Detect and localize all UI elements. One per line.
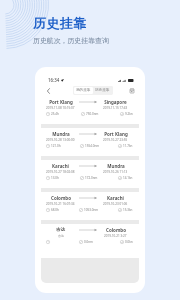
button[interactable]: Colombo bbox=[41, 192, 139, 220]
staticText: 2019-11-08 10:15:07 bbox=[46, 106, 75, 110]
staticText: 1053.0nm bbox=[84, 208, 99, 212]
staticText: 吉达 bbox=[56, 227, 65, 233]
staticText: 0.0kn bbox=[125, 240, 133, 244]
button[interactable]: 我的挂靠 bbox=[74, 87, 93, 94]
staticText: 历史航次，历史挂靠查询 bbox=[33, 36, 109, 45]
staticText: 0.0nm bbox=[84, 240, 93, 244]
button[interactable]: Calendar bbox=[127, 85, 136, 96]
staticText: 2019-10-26 11:13 bbox=[103, 170, 128, 174]
button[interactable]: Port Klang bbox=[41, 96, 139, 124]
staticText: 68.0h bbox=[51, 208, 59, 212]
staticText: 2019-10-21 3:27 bbox=[104, 234, 127, 238]
staticText: Mundra bbox=[107, 163, 125, 169]
button[interactable]: 历史挂靠 bbox=[93, 87, 112, 94]
staticText: 14.1kn bbox=[123, 176, 133, 180]
staticText: Colombo bbox=[51, 195, 71, 201]
staticText: 2019-10-27 18:02:08 bbox=[46, 170, 75, 174]
staticText: 2019-11-15 17:43 bbox=[103, 106, 128, 110]
staticText: 9.2kn bbox=[125, 112, 133, 116]
staticText: 历史挂靠 bbox=[33, 15, 87, 31]
staticText: 2019-10-21 16:07:34 bbox=[46, 202, 75, 206]
staticText: 750.0nm bbox=[86, 112, 99, 116]
staticText: Port Klang bbox=[104, 131, 128, 137]
staticText: Karachi bbox=[52, 163, 69, 169]
staticText: 2019-10-23 01:06 bbox=[103, 202, 128, 206]
staticText: 15.3kn bbox=[123, 208, 133, 212]
staticText: Karachi bbox=[107, 195, 124, 201]
staticText: Singapore bbox=[104, 99, 127, 105]
button[interactable]: 吉达 bbox=[41, 224, 139, 258]
staticText: 2019-10-28 13:00:00 bbox=[46, 138, 75, 142]
staticText: 1554.0nm bbox=[85, 144, 100, 148]
staticText: 13.0h bbox=[51, 176, 59, 180]
staticText: Port Klang bbox=[49, 99, 73, 105]
staticText: 121.0h bbox=[51, 144, 61, 148]
staticText: Mundra bbox=[52, 131, 70, 137]
staticText: Colombo bbox=[106, 227, 126, 233]
staticText: 我的挂靠 bbox=[76, 88, 91, 93]
staticText: 172.0nm bbox=[85, 176, 98, 180]
staticText: 历史挂靠 bbox=[95, 88, 110, 93]
staticText: 16:34 bbox=[48, 77, 60, 83]
staticText: 吉达 bbox=[58, 234, 64, 238]
button[interactable]: Back bbox=[43, 85, 54, 96]
staticText: 11.7kn bbox=[123, 144, 133, 148]
staticText: 25.4h bbox=[51, 112, 59, 116]
button[interactable]: Mundra bbox=[41, 128, 139, 156]
button[interactable]: Karachi bbox=[41, 160, 139, 188]
staticText: 2019-10-27 23:55 bbox=[103, 138, 128, 142]
